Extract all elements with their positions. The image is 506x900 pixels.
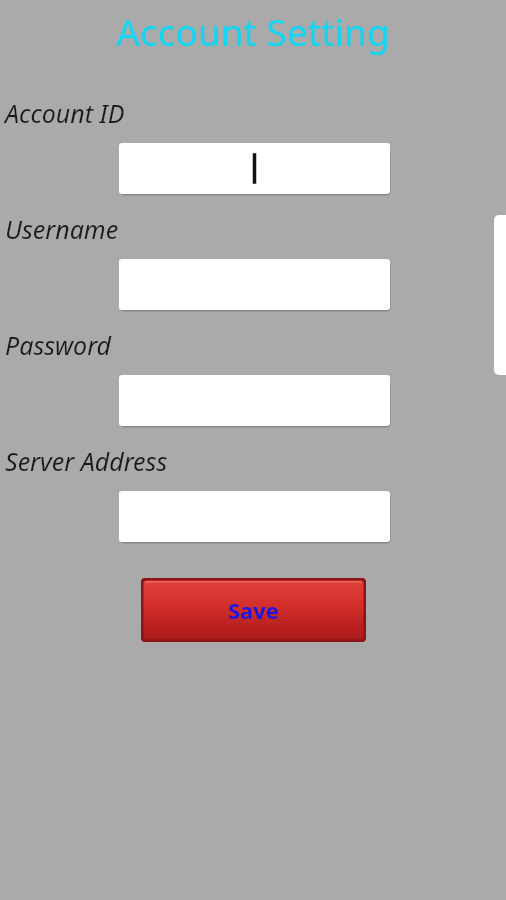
staticText: Account ID [5,96,125,130]
button[interactable]: Save [141,578,366,642]
staticText: Password [5,328,112,362]
staticText: Account Setting [0,6,506,58]
staticText: Save [228,595,279,625]
button[interactable]: Account ID input [119,143,390,194]
staticText: Server Address [5,444,168,478]
staticText: Username [5,212,119,246]
